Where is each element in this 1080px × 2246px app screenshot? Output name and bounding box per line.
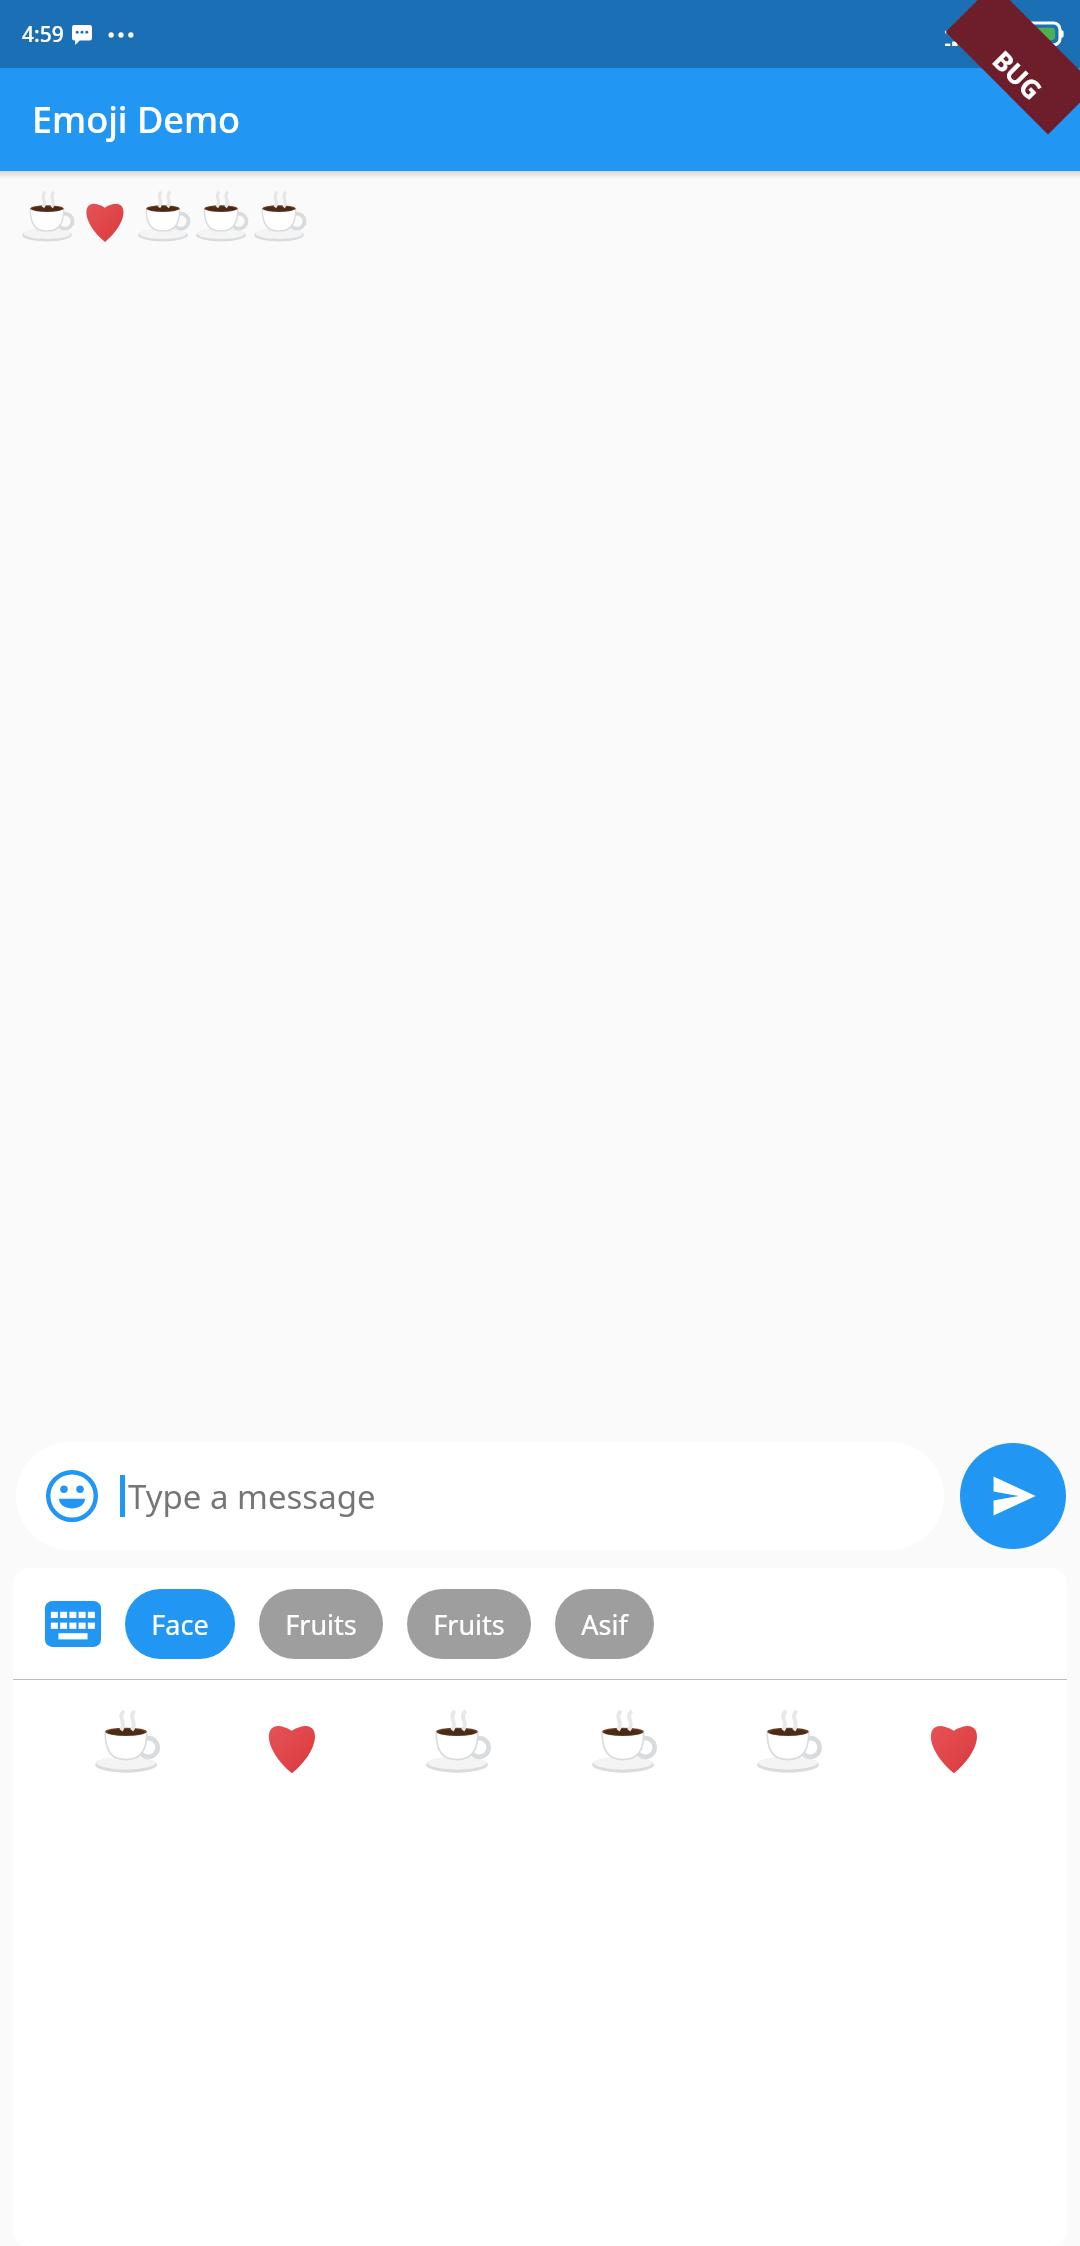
button[interactable] (74, 1694, 178, 1798)
staticText: Fruits (285, 1606, 357, 1643)
button[interactable]: Send (960, 1443, 1066, 1549)
button[interactable] (571, 1694, 675, 1798)
button[interactable]: Asif (555, 1589, 654, 1659)
staticText: Asif (581, 1606, 628, 1643)
staticText: Face (151, 1606, 209, 1643)
button[interactable] (902, 1694, 1006, 1798)
button[interactable] (240, 1694, 344, 1798)
button[interactable]: Fruits (407, 1589, 531, 1659)
staticText: Emoji Demo (32, 95, 241, 144)
button[interactable] (736, 1694, 840, 1798)
button[interactable]: Show keyboard (45, 1601, 101, 1647)
button[interactable]: Face (125, 1589, 235, 1659)
button[interactable]: Emoji keyboard (16, 1442, 944, 1550)
staticText: Type a message (128, 1474, 376, 1519)
staticText: BUG (986, 42, 1050, 107)
button[interactable]: Fruits (259, 1589, 383, 1659)
staticText: 4:59 (22, 20, 64, 49)
button[interactable]: Emoji keyboard (46, 1470, 98, 1522)
button[interactable] (405, 1694, 509, 1798)
staticText: Fruits (433, 1606, 505, 1643)
